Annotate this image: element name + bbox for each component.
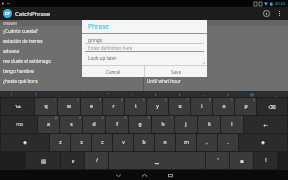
button[interactable]: / xyxy=(216,91,240,97)
button[interactable]: ! xyxy=(0,91,24,97)
button[interactable]: ! xyxy=(254,152,277,169)
button[interactable]: / xyxy=(85,152,108,169)
button[interactable]: p xyxy=(235,98,256,115)
button[interactable]: . xyxy=(218,134,238,151)
button[interactable]: Cancel xyxy=(82,66,144,77)
button[interactable]: d xyxy=(83,116,105,133)
staticText: 20:52 xyxy=(275,1,286,6)
button[interactable]: ( xyxy=(144,91,168,97)
button[interactable]: e xyxy=(81,98,102,115)
button[interactable]: ▪ xyxy=(230,152,253,169)
button[interactable]: my stomach hurts xyxy=(144,56,288,66)
button[interactable]: estación de trenes xyxy=(0,36,143,46)
button[interactable]: aduana xyxy=(0,46,143,56)
button[interactable]: z xyxy=(50,134,70,151)
button[interactable]: - xyxy=(192,91,216,97)
staticText: CatchPhrase xyxy=(15,10,51,18)
staticText: ) xyxy=(179,92,181,97)
button[interactable]: ¿hasta qué hora xyxy=(0,76,143,86)
button[interactable]: w xyxy=(58,98,80,115)
button[interactable]: Until what hour xyxy=(144,76,288,86)
staticText: Enter definition here xyxy=(88,45,133,51)
button[interactable]: k xyxy=(198,116,220,133)
button[interactable]: ?123 xyxy=(1,116,37,133)
button[interactable]: s xyxy=(60,116,82,133)
button[interactable]: _ xyxy=(264,91,288,97)
button[interactable]: @ xyxy=(240,91,264,97)
staticText: ▁ xyxy=(155,158,159,164)
staticText: I am hungry xyxy=(147,68,174,74)
button[interactable]: ) xyxy=(168,91,192,97)
button[interactable]: , xyxy=(197,134,217,151)
button[interactable]: j xyxy=(175,116,197,133)
button[interactable]: ¿Cuánto cuesta? xyxy=(0,26,143,36)
button[interactable]: ? xyxy=(24,91,48,97)
button[interactable]: i xyxy=(191,98,212,115)
button[interactable]: b xyxy=(134,134,154,151)
staticText: . xyxy=(227,139,229,146)
button[interactable]: u xyxy=(169,98,190,115)
button[interactable]: Home xyxy=(131,170,157,180)
staticText: _ xyxy=(275,92,277,97)
button[interactable]: More options xyxy=(273,7,285,20)
button[interactable]: Enter definition here xyxy=(82,44,207,51)
staticText: p xyxy=(244,103,248,110)
button[interactable]: train station xyxy=(144,36,288,46)
staticText: ( xyxy=(155,92,157,97)
button[interactable]: ⌫ xyxy=(257,98,287,115)
button[interactable]: Back xyxy=(105,170,131,180)
staticText: 0 xyxy=(253,98,255,102)
button[interactable]: ⬥ xyxy=(1,134,49,151)
staticText: # xyxy=(79,116,81,120)
button[interactable]: ⬥ xyxy=(239,134,287,151)
button[interactable]: m xyxy=(176,134,196,151)
button[interactable]: Recent apps xyxy=(157,170,183,180)
button[interactable]: gringo xyxy=(82,36,207,43)
button[interactable]: t xyxy=(125,98,146,115)
button[interactable]: , xyxy=(48,91,72,97)
button[interactable]: f xyxy=(106,116,128,133)
staticText: y xyxy=(156,103,159,110)
staticText: h xyxy=(161,121,165,128)
button[interactable]: a xyxy=(38,116,59,133)
staticText: ' xyxy=(84,92,85,97)
button[interactable]: Info xyxy=(259,7,273,20)
staticText: - xyxy=(195,116,196,120)
staticText: : xyxy=(131,92,133,97)
button[interactable]: r xyxy=(103,98,124,115)
button[interactable]: g xyxy=(129,116,151,133)
button[interactable]: ▤ xyxy=(26,152,60,169)
button[interactable]: Look up later xyxy=(82,52,207,65)
button[interactable]: n xyxy=(155,134,175,151)
button[interactable]: q xyxy=(35,98,57,115)
staticText: , xyxy=(206,139,208,146)
staticText: k xyxy=(208,121,211,128)
button[interactable]: customs xyxy=(144,46,288,56)
button[interactable]: o xyxy=(213,98,234,115)
button[interactable]: tengo hambre xyxy=(0,66,143,76)
staticText: 5 xyxy=(143,98,145,102)
staticText: e xyxy=(90,103,93,110)
button[interactable]: c xyxy=(92,134,112,151)
button[interactable]: Tab xyxy=(1,98,34,115)
button[interactable]: ← xyxy=(244,116,287,133)
button[interactable]: me duele el estómago xyxy=(0,56,143,66)
button[interactable]: How much does it cost? xyxy=(144,26,288,36)
button[interactable]: x xyxy=(71,134,91,151)
button[interactable]: " xyxy=(96,91,120,97)
button[interactable]: I am hungry xyxy=(144,66,288,76)
button[interactable]: y xyxy=(147,98,168,115)
button[interactable]: ' xyxy=(72,91,96,97)
button[interactable]: ∨ xyxy=(61,152,84,169)
button[interactable]: ▁ xyxy=(109,152,205,169)
button[interactable]: v xyxy=(113,134,133,151)
staticText: customs xyxy=(147,48,166,54)
button[interactable]: ' xyxy=(206,152,229,169)
staticText: x xyxy=(80,139,83,146)
button[interactable]: h xyxy=(152,116,174,133)
button[interactable]: : xyxy=(120,91,144,97)
button[interactable]: l xyxy=(221,116,243,133)
button[interactable]: Save xyxy=(145,66,207,77)
staticText: u xyxy=(178,103,182,110)
